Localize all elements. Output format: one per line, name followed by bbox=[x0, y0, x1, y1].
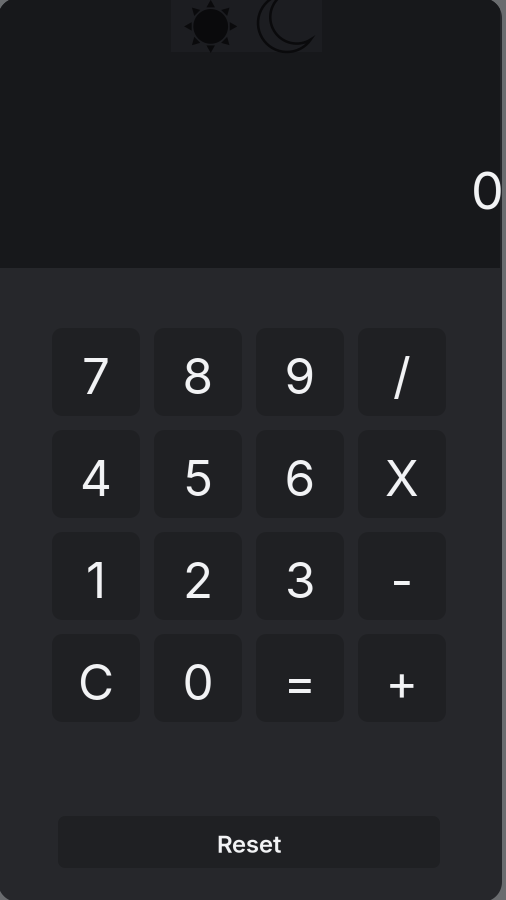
button[interactable]: 3 bbox=[256, 532, 344, 620]
button[interactable]: 7 bbox=[52, 328, 140, 416]
staticText: / bbox=[393, 346, 411, 406]
button[interactable]: 6 bbox=[256, 430, 344, 518]
button[interactable]: 2 bbox=[154, 532, 242, 620]
staticText: 4 bbox=[80, 448, 112, 508]
staticText: = bbox=[283, 652, 316, 712]
staticText: 3 bbox=[285, 550, 315, 610]
staticText: - bbox=[390, 550, 413, 610]
staticText: 8 bbox=[182, 346, 213, 406]
button[interactable]: 5 bbox=[154, 430, 242, 518]
button[interactable]: 1 bbox=[52, 532, 140, 620]
staticText: 1 bbox=[86, 550, 106, 610]
button[interactable]: 0 bbox=[154, 634, 242, 722]
button[interactable]: Reset bbox=[58, 816, 440, 868]
button[interactable]: C bbox=[52, 634, 140, 722]
button[interactable]: / bbox=[358, 328, 446, 416]
staticText: C bbox=[78, 652, 114, 712]
staticText: 5 bbox=[183, 448, 213, 508]
staticText: 7 bbox=[82, 346, 110, 406]
staticText: + bbox=[385, 652, 418, 712]
button[interactable]: + bbox=[358, 634, 446, 722]
staticText: Reset bbox=[217, 829, 281, 858]
button[interactable]: Light theme bbox=[171, 0, 247, 52]
staticText: 2 bbox=[183, 550, 213, 610]
staticText: 6 bbox=[284, 448, 315, 508]
button[interactable]: X bbox=[358, 430, 446, 518]
staticText: X bbox=[385, 448, 419, 508]
button[interactable]: - bbox=[358, 532, 446, 620]
button[interactable]: = bbox=[256, 634, 344, 722]
staticText: 0 bbox=[182, 652, 213, 712]
button[interactable]: 4 bbox=[52, 430, 140, 518]
staticText: 0 bbox=[471, 159, 504, 222]
button[interactable]: 8 bbox=[154, 328, 242, 416]
button[interactable]: 9 bbox=[256, 328, 344, 416]
button[interactable]: Dark theme bbox=[171, 0, 322, 52]
staticText: 9 bbox=[284, 346, 315, 406]
